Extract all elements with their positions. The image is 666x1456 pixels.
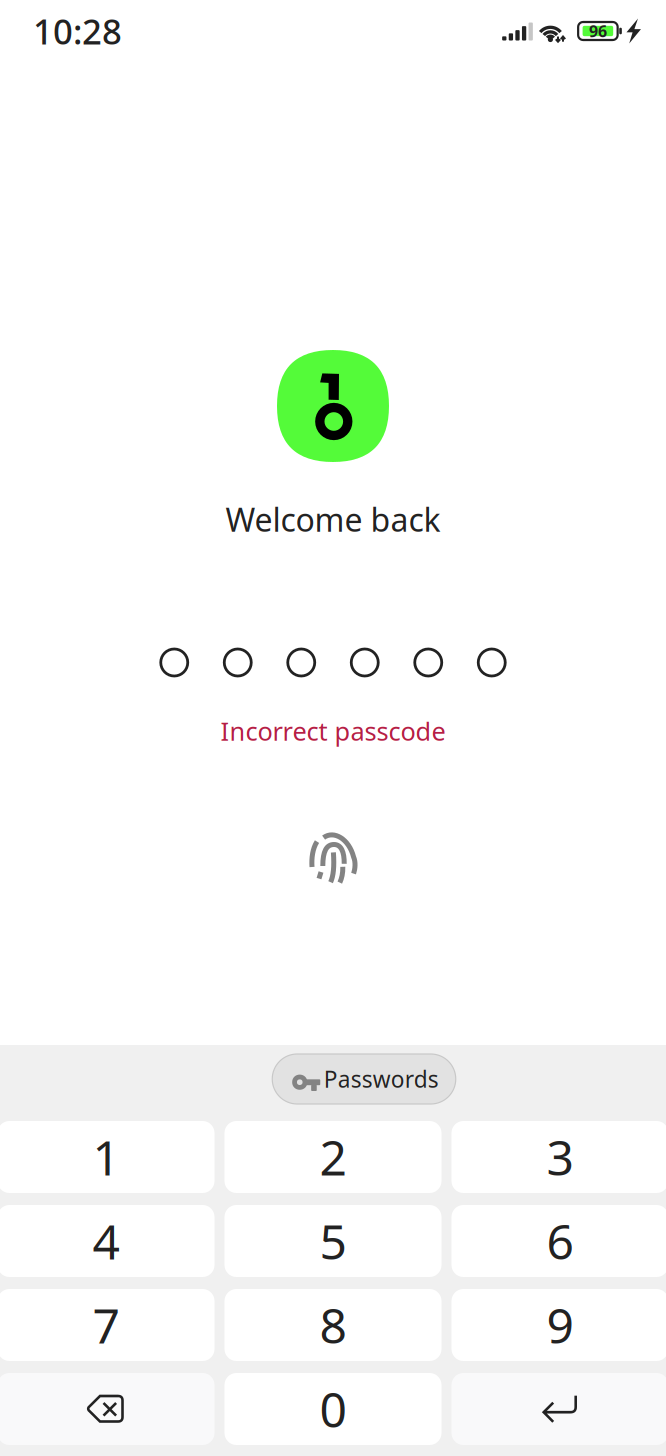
staticText: 8 [319, 1293, 346, 1357]
staticText: 10:28 [33, 8, 122, 54]
staticText: 5 [319, 1209, 346, 1273]
staticText: 2 [319, 1125, 346, 1189]
button[interactable]: Delete [0, 1373, 214, 1445]
staticText: 1 [92, 1125, 119, 1189]
staticText: Passwords [324, 1064, 439, 1094]
button[interactable]: 0 [224, 1373, 441, 1445]
staticText: 4 [92, 1209, 119, 1273]
staticText: Incorrect passcode [220, 714, 445, 748]
button[interactable]: 1 [0, 1121, 214, 1193]
button[interactable]: 2 [224, 1121, 441, 1193]
staticText: Welcome back [225, 498, 440, 540]
button[interactable]: 4 [0, 1205, 214, 1277]
staticText: 7 [92, 1293, 119, 1357]
staticText: 6 [546, 1209, 573, 1273]
button[interactable]: 6 [451, 1205, 666, 1277]
button[interactable]: 8 [224, 1289, 441, 1361]
staticText: 96 [589, 20, 607, 42]
staticText: 9 [546, 1293, 573, 1357]
button[interactable]: Unlock with fingerprint [304, 829, 362, 887]
button[interactable]: 9 [451, 1289, 666, 1361]
button[interactable]: 3 [451, 1121, 666, 1193]
button[interactable]: Passwords [272, 1054, 456, 1104]
staticText: 0 [319, 1377, 346, 1441]
staticText: 3 [546, 1125, 573, 1189]
button[interactable]: 5 [224, 1205, 441, 1277]
button[interactable]: 7 [0, 1289, 214, 1361]
button[interactable]: Return [451, 1373, 666, 1445]
